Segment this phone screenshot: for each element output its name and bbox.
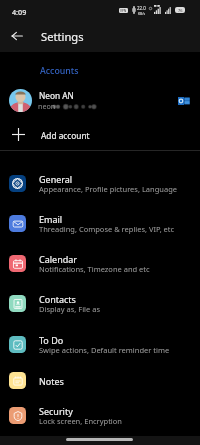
staticText: Neon AN [39, 90, 74, 101]
staticText: VPN [120, 9, 127, 13]
staticText: Accounts [40, 65, 79, 77]
staticText: Notes [39, 375, 64, 387]
staticText: 76 [178, 8, 183, 13]
staticText: 4:09 [12, 7, 27, 17]
staticText: Email [39, 213, 63, 225]
button[interactable]: General [0, 164, 200, 204]
staticText: 22.0 [137, 5, 146, 11]
staticText: Settings [41, 29, 84, 44]
staticText: Security [39, 405, 73, 417]
staticText: Lock screen, Encryption [39, 416, 122, 426]
button[interactable]: Security [0, 396, 200, 436]
staticText: KB/s [138, 11, 146, 16]
staticText: General [39, 173, 73, 185]
button[interactable]: Back [5, 24, 29, 48]
staticText: Threading, Compose & replies, VIP, etc [39, 224, 175, 234]
staticText: Add account [41, 130, 90, 141]
button[interactable]: Notes [0, 365, 200, 396]
button[interactable]: Calendar [0, 244, 200, 284]
button[interactable]: Add account [0, 120, 200, 149]
staticText: Notifications, Timezone and etc [39, 264, 150, 274]
staticText: Appearance, Profile pictures, Language [39, 184, 177, 194]
button[interactable]: Contacts [0, 284, 200, 324]
staticText: Swipe actions, Default reminder time [39, 345, 170, 355]
staticText: Contacts [39, 293, 76, 305]
button[interactable]: To Do [0, 325, 200, 365]
staticText: neon [38, 101, 56, 111]
staticText: To Do [39, 334, 64, 346]
staticText: Calendar [39, 253, 77, 265]
button[interactable]: Email [0, 204, 200, 244]
staticText: Display as, File as [39, 304, 101, 314]
button[interactable]: Neon AN [0, 84, 200, 117]
